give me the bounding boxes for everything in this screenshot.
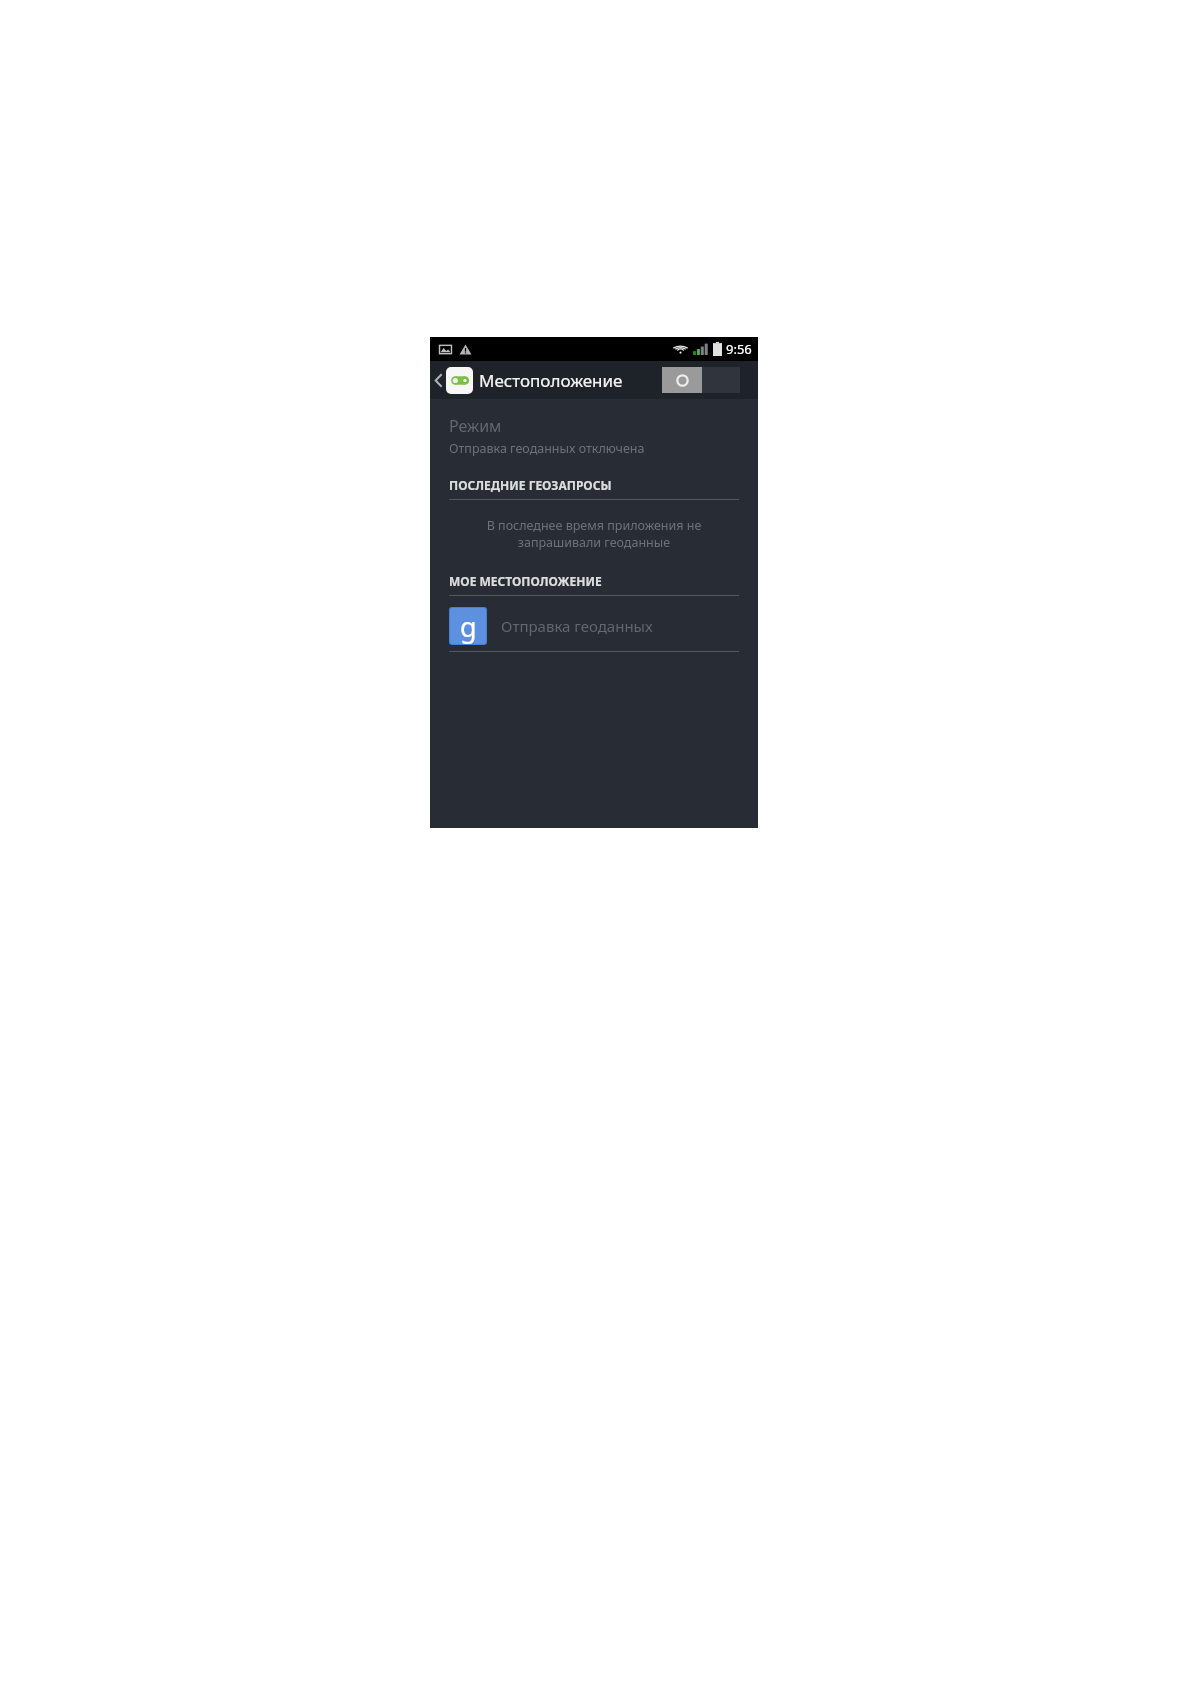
staticText: Отправка геоданных отключена <box>449 440 645 457</box>
button[interactable]: Location toggle <box>662 367 740 393</box>
staticText: Режим <box>449 415 502 437</box>
staticText: В последнее время приложения не запрашив… <box>454 517 734 551</box>
staticText: Отправка геоданных <box>501 616 653 636</box>
staticText: ПОСЛЕДНИЕ ГЕОЗАПРОСЫ <box>449 477 612 493</box>
other: Back <box>434 373 443 388</box>
staticText: Местоположение <box>479 369 623 392</box>
button[interactable]: g <box>430 601 758 651</box>
button[interactable]: Режим <box>430 411 758 465</box>
button[interactable]: Back <box>430 361 623 399</box>
staticText: 9:56 <box>726 340 752 358</box>
staticText: МОЕ МЕСТОПОЛОЖЕНИЕ <box>449 573 602 589</box>
staticText: g <box>460 608 477 644</box>
